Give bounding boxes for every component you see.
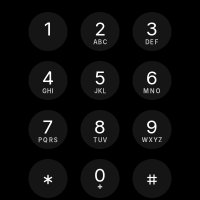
button[interactable]: 2 bbox=[80, 12, 119, 51]
button[interactable]: 5 bbox=[80, 61, 119, 100]
staticText: MNO bbox=[143, 87, 161, 95]
staticText: JKL bbox=[94, 87, 106, 95]
staticText: GHI bbox=[42, 87, 54, 95]
button[interactable]: 3 bbox=[132, 12, 171, 51]
staticText: 7 bbox=[42, 115, 53, 138]
staticText: 8 bbox=[94, 115, 106, 138]
staticText: 4 bbox=[42, 66, 54, 89]
button[interactable]: 9 bbox=[132, 110, 171, 149]
button[interactable]: Zero plus bbox=[80, 159, 119, 198]
staticText: WXYZ bbox=[142, 136, 162, 144]
staticText: 2 bbox=[94, 17, 105, 40]
staticText: DEF bbox=[145, 38, 159, 46]
button[interactable]: 8 bbox=[80, 110, 119, 149]
button[interactable]: 4 bbox=[28, 61, 67, 100]
staticText: 0 bbox=[94, 164, 106, 186]
button[interactable]: Pound bbox=[132, 159, 171, 198]
staticText: 3 bbox=[146, 17, 158, 40]
staticText: 1 bbox=[44, 17, 52, 40]
staticText: ABC bbox=[93, 38, 107, 46]
staticText: TUV bbox=[93, 136, 107, 144]
button[interactable]: Star bbox=[28, 159, 67, 198]
button[interactable]: 6 bbox=[132, 61, 171, 100]
staticText: PQRS bbox=[38, 136, 58, 144]
button[interactable]: 1 bbox=[28, 12, 67, 51]
staticText: 5 bbox=[94, 66, 105, 89]
button[interactable]: 7 bbox=[28, 110, 67, 149]
staticText: 6 bbox=[146, 66, 158, 89]
staticText: 9 bbox=[146, 115, 158, 138]
